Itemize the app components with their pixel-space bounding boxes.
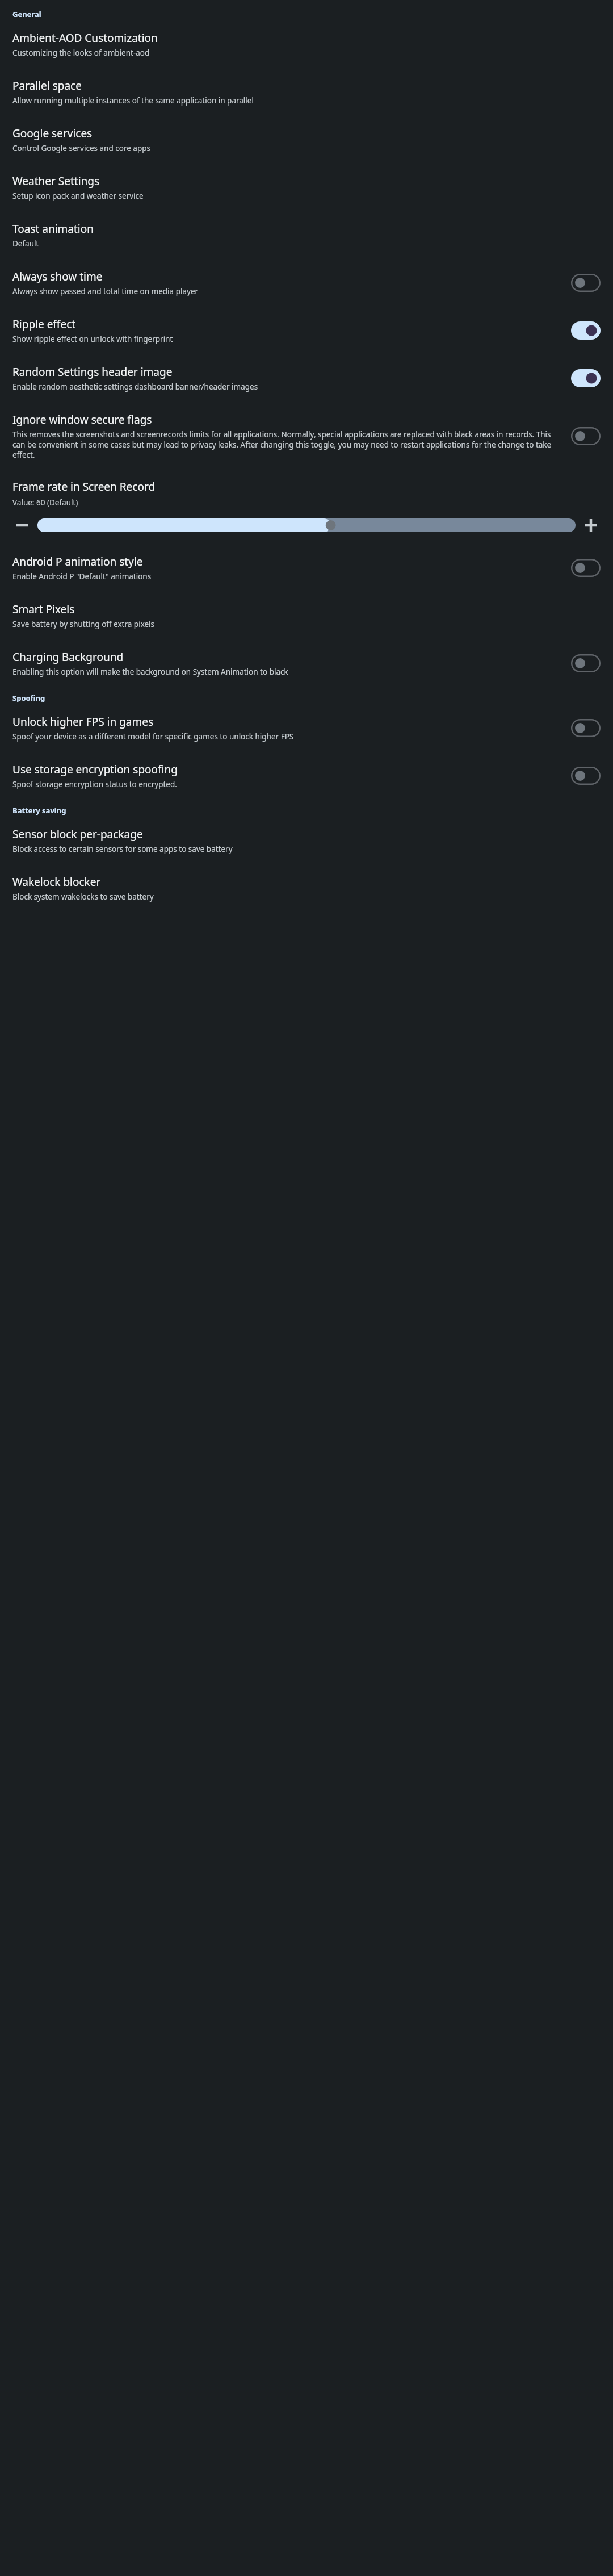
button[interactable]: Frame rate in Screen Record: [12, 479, 156, 494]
staticText: Smart Pixels: [12, 602, 75, 617]
button[interactable]: Unlock higher FPS in games: [0, 706, 613, 750]
button[interactable]: Android P animation style: [0, 546, 613, 589]
staticText: Default: [12, 239, 39, 249]
staticText: Sensor block per-package: [12, 827, 143, 842]
staticText: Block access to certain sensors for some…: [12, 844, 233, 854]
staticText: Customizing the looks of ambient-aod: [12, 48, 150, 58]
staticText: Value: 60 (Default): [12, 497, 78, 508]
button[interactable]: Sensor block per-package: [0, 819, 613, 862]
staticText: This removes the screenshots and screenr…: [12, 429, 562, 460]
button[interactable]: Toast animation: [0, 214, 613, 257]
button[interactable]: Ignore window secure flags: [0, 404, 613, 468]
staticText: Parallel space: [12, 78, 82, 93]
button[interactable]: Charging Background: [0, 642, 613, 685]
button[interactable]: Increase: [581, 516, 601, 535]
staticText: Enable random aesthetic settings dashboa…: [12, 382, 258, 392]
staticText: Show ripple effect on unlock with finger…: [12, 334, 173, 344]
staticText: Always show time: [12, 269, 103, 284]
staticText: Android P animation style: [12, 554, 143, 569]
staticText: Spoof your device as a different model f…: [12, 731, 294, 742]
button[interactable]: Smart Pixels: [0, 594, 613, 637]
staticText: Ignore window secure flags: [12, 412, 152, 427]
button[interactable]: Wakelock blocker: [0, 867, 613, 910]
button[interactable]: Random Settings header image: [0, 357, 613, 400]
button[interactable]: Weather Settings: [0, 166, 613, 209]
staticText: Use storage encryption spoofing: [12, 762, 178, 777]
button[interactable]: Decrease: [12, 516, 32, 535]
button[interactable]: Random Settings header image: [571, 369, 601, 387]
button[interactable]: Unlock higher FPS in games: [571, 719, 601, 737]
button[interactable]: Use storage encryption spoofing: [0, 754, 613, 797]
staticText: Allow running multiple instances of the …: [12, 95, 254, 106]
staticText: Battery saving: [12, 805, 601, 816]
staticText: Weather Settings: [12, 174, 100, 189]
staticText: Enabling this option will make the backg…: [12, 667, 288, 677]
staticText: Enable Android P "Default" animations: [12, 571, 152, 582]
button[interactable]: Frame rate slider: [37, 518, 576, 532]
staticText: Always show passed and total time on med…: [12, 286, 199, 296]
staticText: Control Google services and core apps: [12, 143, 150, 153]
button[interactable]: Parallel space: [0, 70, 613, 114]
button[interactable]: Google services: [0, 118, 613, 161]
staticText: Google services: [12, 126, 93, 141]
staticText: Wakelock blocker: [12, 875, 101, 889]
button[interactable]: Charging Background: [571, 654, 601, 672]
staticText: Toast animation: [12, 221, 94, 236]
button[interactable]: Ripple effect: [571, 321, 601, 340]
button[interactable]: Ignore window secure flags: [571, 427, 601, 445]
button[interactable]: Ambient-AOD Customization: [0, 23, 613, 66]
button[interactable]: Always show time: [571, 274, 601, 292]
staticText: Spoofing: [12, 693, 601, 703]
staticText: Random Settings header image: [12, 365, 173, 379]
staticText: Ambient-AOD Customization: [12, 31, 158, 45]
button[interactable]: Use storage encryption spoofing: [571, 767, 601, 785]
button[interactable]: Android P animation style: [571, 559, 601, 577]
staticText: General: [12, 9, 601, 19]
staticText: Charging Background: [12, 650, 124, 664]
staticText: Setup icon pack and weather service: [12, 191, 144, 201]
staticText: Spoof storage encryption status to encry…: [12, 779, 177, 789]
button[interactable]: Always show time: [0, 261, 613, 304]
staticText: Save battery by shutting off extra pixel…: [12, 619, 155, 629]
staticText: Block system wakelocks to save battery: [12, 892, 154, 902]
button[interactable]: Ripple effect: [0, 309, 613, 352]
staticText: Unlock higher FPS in games: [12, 714, 154, 729]
staticText: Ripple effect: [12, 317, 76, 332]
